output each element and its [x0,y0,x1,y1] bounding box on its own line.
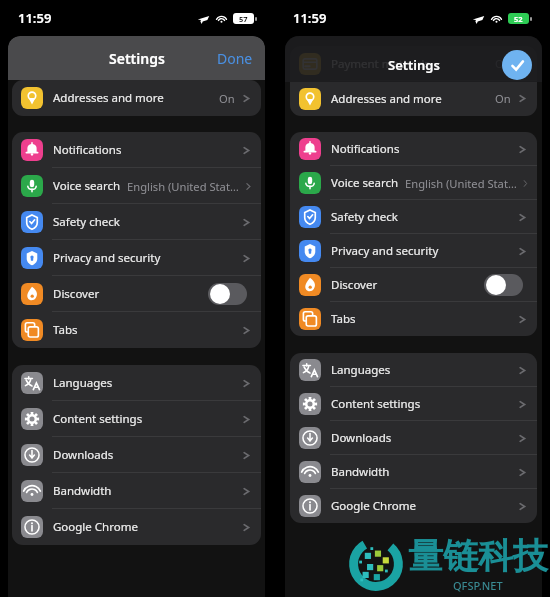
staticText: English (United Stat… [405,176,517,191]
staticText: Bandwidth [53,483,112,499]
button[interactable]: Content settings [290,387,537,421]
staticText: 量链科技 [408,534,548,578]
button[interactable]: Done [502,50,532,80]
button[interactable]: Downloads [12,437,261,473]
button[interactable]: Languages [12,365,261,401]
staticText: Safety check [331,209,398,225]
button[interactable]: Addresses and more [12,80,261,116]
button[interactable]: Notifications [290,132,537,166]
button[interactable]: Privacy and security [12,240,261,276]
staticText: Voice search [331,175,399,191]
staticText: On [495,91,511,106]
staticText: Payment methods [331,56,430,72]
staticText: Discover [53,286,100,302]
staticText: 52 [514,14,523,24]
staticText: QFSP.NET [453,578,503,593]
button[interactable]: Discover [290,268,537,302]
staticText: Google Chrome [53,519,138,535]
button[interactable]: Addresses and more [290,81,537,116]
staticText: 11:59 [293,9,327,27]
staticText: Settings [109,49,165,68]
staticText: Voice search [53,178,121,194]
button[interactable]: Content settings [12,401,261,437]
staticText: Tabs [53,322,78,338]
button[interactable]: Privacy and security [290,234,537,268]
staticText: Notifications [53,142,122,158]
staticText: Languages [331,362,391,378]
button[interactable]: Google Chrome [12,509,261,545]
staticText: Content settings [331,396,421,412]
staticText: Addresses and more [331,91,442,107]
button[interactable]: Voice search [290,166,537,200]
button[interactable]: Bandwidth [290,455,537,489]
staticText: Addresses and more [53,90,164,106]
staticText: Google Chrome [331,498,416,514]
staticText: Downloads [331,430,392,446]
staticText: On [495,56,511,71]
button[interactable]: Google Chrome [290,489,537,523]
staticText: Privacy and security [53,250,161,266]
staticText: Content settings [53,411,143,427]
button[interactable]: Downloads [290,421,537,455]
button[interactable]: Safety check [12,204,261,240]
button[interactable]: Tabs [290,302,537,336]
staticText: On [219,91,235,106]
staticText: Tabs [331,311,356,327]
button[interactable]: Tabs [12,312,261,348]
staticText: Privacy and security [331,243,439,259]
staticText: Safety check [53,214,120,230]
staticText: Settings [388,56,440,74]
button[interactable]: Voice search [12,168,261,204]
button[interactable]: Safety check [290,200,537,234]
staticText: Discover [331,277,378,293]
staticText: 57 [239,14,248,24]
button[interactable]: Notifications [12,132,261,168]
staticText: 11:59 [18,9,52,27]
staticText: Notifications [331,141,400,157]
staticText: Downloads [53,447,114,463]
staticText: Done [217,49,253,68]
button[interactable]: Discover toggle [208,283,247,305]
staticText: English (United Stat… [127,179,239,194]
button[interactable]: Payment methods [290,46,537,81]
staticText: Bandwidth [331,464,390,480]
button[interactable]: Bandwidth [12,473,261,509]
staticText: Languages [53,375,113,391]
button[interactable]: Discover [12,276,261,312]
button[interactable]: Done [205,41,265,76]
button[interactable]: Languages [290,353,537,387]
button[interactable]: Discover toggle [484,274,523,296]
